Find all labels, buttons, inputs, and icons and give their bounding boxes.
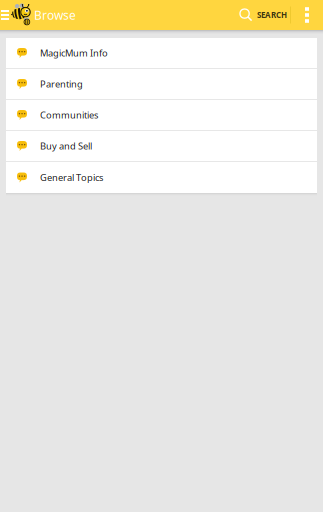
button[interactable]: MagicMum Info [6, 38, 317, 69]
staticText: SEARCH [257, 10, 287, 20]
staticText: Parenting [40, 78, 83, 90]
button[interactable]: Parenting [6, 69, 317, 100]
staticText: Browse [34, 7, 76, 23]
button[interactable]: Open navigation menu [1, 0, 9, 30]
button[interactable]: SEARCH [233, 0, 287, 30]
button[interactable]: General Topics [6, 162, 317, 193]
staticText: General Topics [40, 171, 103, 184]
staticText: MagicMum Info [40, 47, 108, 59]
staticText: Buy and Sell [40, 140, 92, 152]
button[interactable]: More options [305, 0, 309, 30]
button[interactable]: Communities [6, 100, 317, 131]
button[interactable]: Buy and Sell [6, 131, 317, 162]
staticText: Communities [40, 109, 98, 121]
